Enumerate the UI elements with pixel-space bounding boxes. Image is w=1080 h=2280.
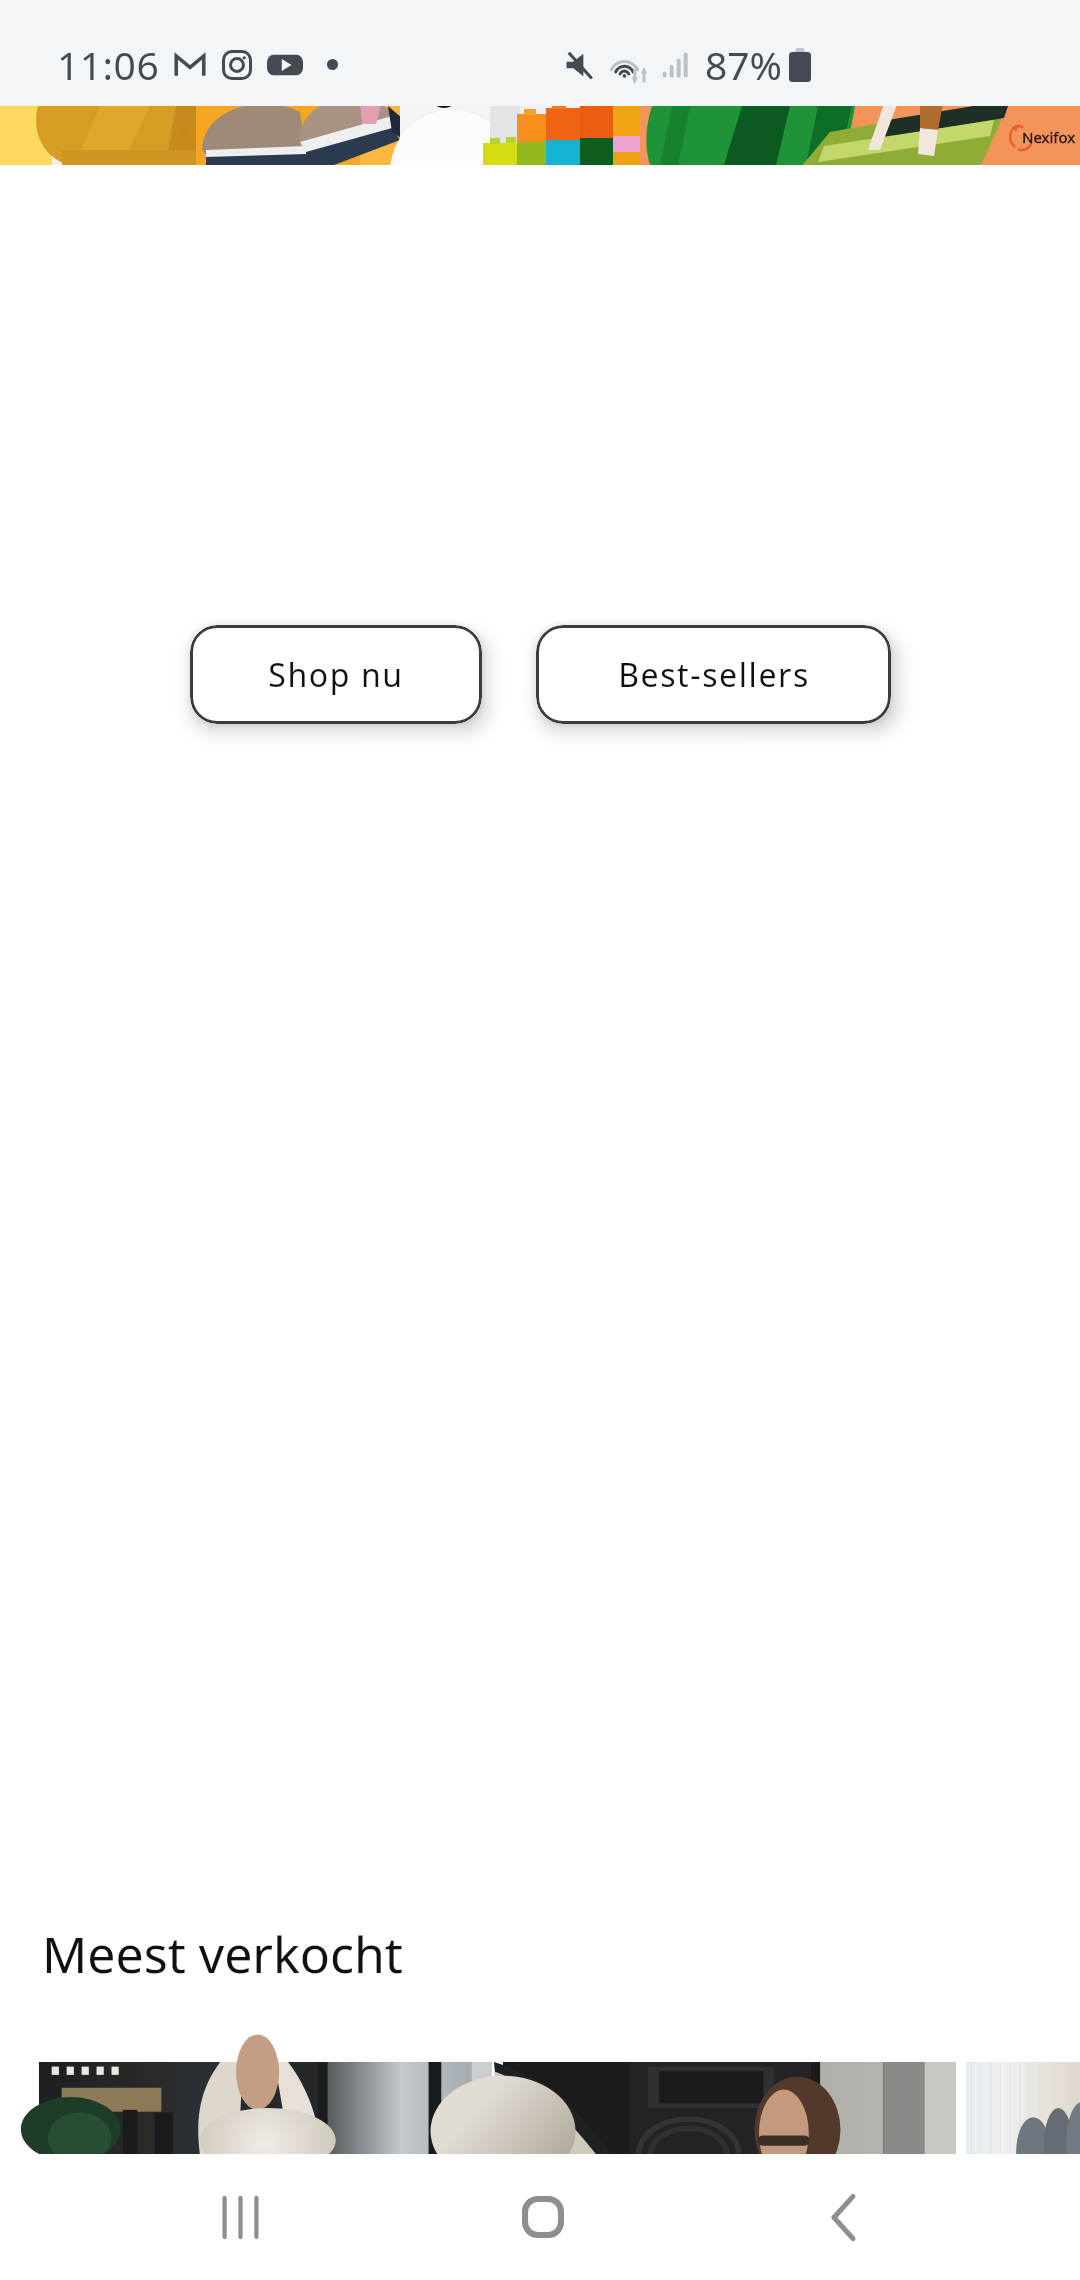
staticText: Nexifox [1022, 127, 1076, 147]
button[interactable]: Best-sellers [536, 625, 891, 724]
button[interactable]: Shop nu [190, 625, 482, 724]
staticText: Meest verkocht [42, 1920, 403, 1988]
staticText: Shop nu [268, 653, 404, 697]
staticText: Best-sellers [618, 653, 810, 697]
button[interactable]: Nexifox promo banner [0, 106, 1080, 165]
button[interactable]: Recent apps [180, 2173, 300, 2261]
button[interactable]: Product 3 [966, 2062, 1080, 2154]
button[interactable]: Home [483, 2173, 603, 2261]
button[interactable]: Product 2 [503, 2062, 956, 2154]
staticText: 11:06 [57, 38, 160, 91]
button[interactable]: Back [783, 2173, 903, 2261]
button[interactable]: Product 1 [39, 2062, 492, 2154]
staticText: 87% [705, 38, 783, 91]
